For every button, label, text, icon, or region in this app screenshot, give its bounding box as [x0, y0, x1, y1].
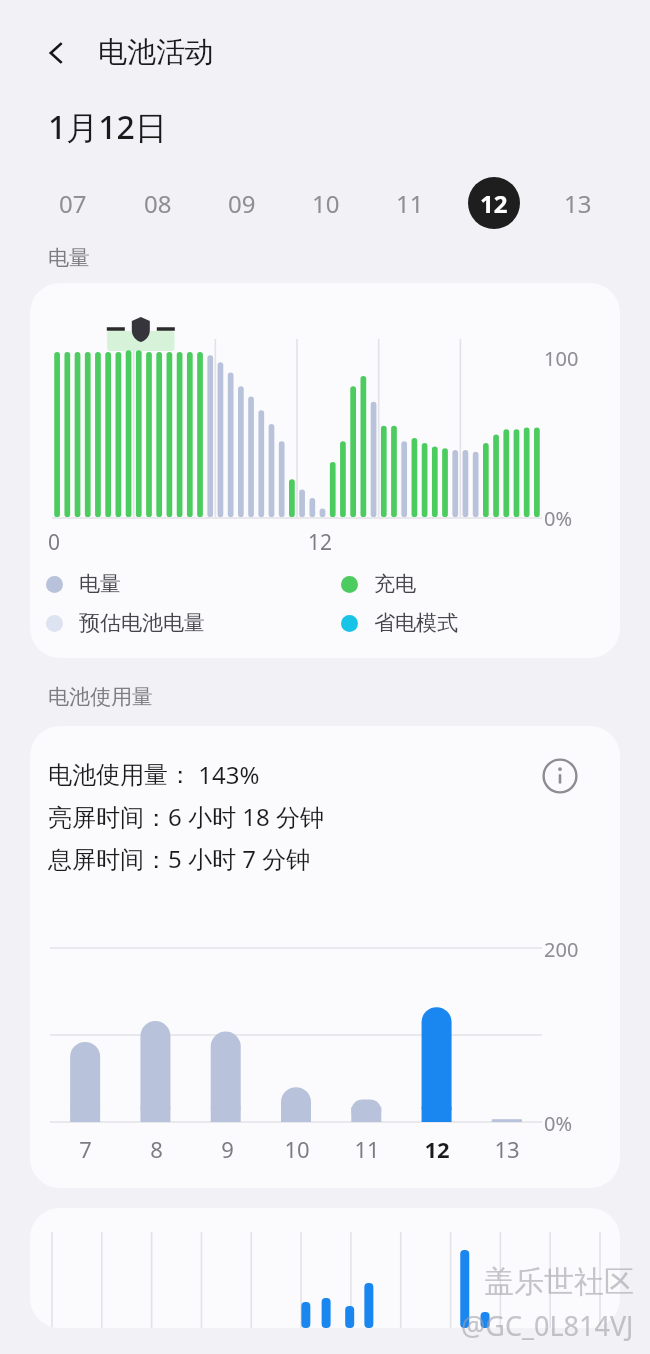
- staticText: 盖乐世社区: [484, 1263, 634, 1301]
- staticText: 200: [544, 936, 579, 963]
- staticText: 预估电池电量: [79, 610, 205, 636]
- button[interactable]: 09: [200, 175, 284, 231]
- button[interactable]: 07: [30, 175, 115, 231]
- staticText: @GC_0L814VJ: [461, 1307, 634, 1344]
- staticText: 电量: [79, 571, 121, 597]
- button[interactable]: 预估电池电量: [46, 610, 341, 636]
- staticText: 9: [221, 1134, 234, 1164]
- staticText: 07: [59, 187, 87, 220]
- staticText: 0%: [544, 1110, 573, 1137]
- button[interactable]: 10: [284, 175, 368, 231]
- staticText: 143%: [192, 758, 260, 791]
- staticText: 电池使用量：: [48, 760, 192, 790]
- button[interactable]: 省电模式: [341, 610, 620, 636]
- button[interactable]: 11: [368, 175, 452, 231]
- staticText: 13: [494, 1134, 520, 1164]
- button[interactable]: 13: [536, 175, 620, 231]
- button[interactable]: [30, 1208, 620, 1328]
- staticText: 息屏时间：5 小时 7 分钟: [48, 842, 311, 875]
- staticText: 1月12日: [48, 105, 167, 149]
- button[interactable]: 充电: [341, 571, 620, 597]
- button[interactable]: Back: [34, 30, 80, 76]
- staticText: 09: [228, 187, 256, 220]
- button[interactable]: 电池使用量：: [30, 726, 620, 1188]
- staticText: 电池活动: [98, 34, 214, 71]
- staticText: 08: [144, 187, 172, 220]
- staticText: 11: [354, 1134, 380, 1164]
- staticText: 省电模式: [374, 610, 458, 636]
- staticText: 10: [284, 1134, 310, 1164]
- staticText: 12: [424, 1134, 450, 1164]
- staticText: 12: [480, 187, 508, 220]
- staticText: 12: [308, 528, 333, 557]
- staticText: 11: [396, 187, 424, 220]
- staticText: 充电: [374, 571, 416, 597]
- staticText: 电量: [48, 245, 90, 271]
- staticText: 亮屏时间：6 小时 18 分钟: [48, 800, 324, 833]
- staticText: 7: [79, 1134, 92, 1164]
- button[interactable]: Information: [534, 750, 586, 802]
- staticText: 电池使用量: [48, 684, 153, 710]
- staticText: 100: [544, 345, 579, 372]
- button[interactable]: 100: [30, 283, 620, 658]
- button[interactable]: 12: [452, 175, 536, 231]
- staticText: 13: [564, 187, 592, 220]
- staticText: 8: [150, 1134, 163, 1164]
- staticText: 0%: [544, 505, 573, 532]
- staticText: 10: [312, 187, 340, 220]
- button[interactable]: 电量: [46, 571, 341, 597]
- staticText: 0: [48, 528, 61, 557]
- button[interactable]: 08: [115, 175, 200, 231]
